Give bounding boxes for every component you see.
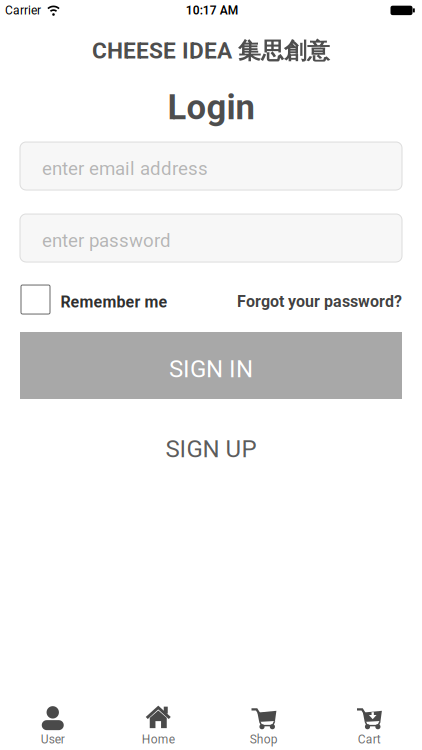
button[interactable]: enter email address xyxy=(20,142,402,190)
staticText: User xyxy=(41,733,65,746)
staticText: Login xyxy=(167,88,254,127)
staticText: Home xyxy=(142,733,175,746)
button[interactable]: Remember me xyxy=(21,285,167,314)
button[interactable]: Cart xyxy=(316,706,422,746)
staticText: Remember me xyxy=(60,293,167,311)
staticText: Forgot your password? xyxy=(237,292,402,311)
staticText: Carrier xyxy=(5,4,41,17)
staticText: CHEESE IDEA 集思創意 xyxy=(92,37,330,65)
staticText: enter password xyxy=(42,230,171,251)
button[interactable]: SIGN UP xyxy=(165,435,256,463)
staticText: SIGN UP xyxy=(165,435,256,463)
button[interactable]: SIGN IN xyxy=(20,332,402,399)
button[interactable]: enter password xyxy=(20,214,402,262)
staticText: Cart xyxy=(358,733,381,746)
button[interactable]: User xyxy=(0,706,105,746)
staticText: Shop xyxy=(250,733,278,746)
staticText: 10:17 AM xyxy=(186,4,239,17)
staticText: enter email address xyxy=(42,158,208,179)
button[interactable]: Shop xyxy=(211,706,316,746)
button[interactable]: Home xyxy=(105,706,211,746)
button[interactable]: Forgot your password? xyxy=(237,290,402,309)
staticText: SIGN IN xyxy=(169,355,253,383)
